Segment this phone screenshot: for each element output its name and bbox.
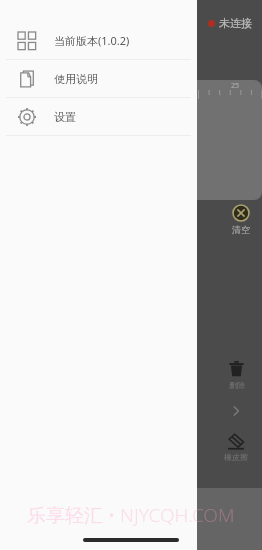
button[interactable]: 设置 <box>0 98 197 135</box>
staticText: 当前版本(1.0.2) <box>54 33 130 48</box>
button[interactable]: 使用说明 <box>0 60 197 97</box>
staticText: 使用说明 <box>54 72 98 86</box>
staticText: 删除 <box>229 380 245 390</box>
button[interactable]: Expand <box>228 403 244 419</box>
staticText: 设置 <box>54 110 76 124</box>
staticText: 乐享轻汇 • NJYCQH.COM <box>27 502 235 528</box>
staticText: 加收藏 <box>64 502 94 515</box>
button[interactable]: 删除 <box>228 360 245 390</box>
button[interactable]: 当前版本(1.0.2) <box>0 22 197 59</box>
staticText: 橡皮擦 <box>224 452 248 462</box>
button[interactable]: 橡皮擦 <box>224 432 248 462</box>
staticText: 25 <box>231 81 240 91</box>
staticText: 清空 <box>232 224 250 235</box>
button[interactable]: 清空 <box>232 205 250 235</box>
staticText: 未连接 <box>219 16 252 30</box>
